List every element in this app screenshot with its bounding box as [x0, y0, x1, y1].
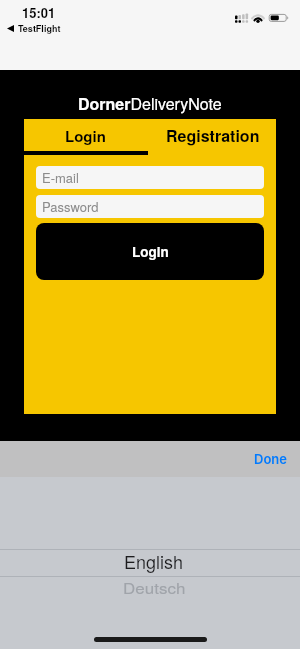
staticText: Deutsch: [123, 577, 186, 597]
staticText: Login: [132, 242, 169, 261]
staticText: Registration: [166, 124, 260, 147]
button[interactable]: Registration: [150, 119, 276, 151]
button[interactable]: Done: [254, 451, 287, 467]
button[interactable]: E-mail: [36, 166, 264, 189]
staticText: Password: [42, 197, 99, 216]
button[interactable]: Deutsch: [0, 577, 300, 603]
staticText: 15:01: [22, 3, 56, 22]
button[interactable]: Back to TestFlight: [7, 22, 61, 35]
staticText: English: [124, 548, 184, 574]
button[interactable]: Login: [24, 119, 150, 151]
button[interactable]: Password: [36, 195, 264, 218]
button[interactable]: English: [0, 550, 300, 576]
staticText: E-mail: [42, 168, 79, 187]
staticText: Login: [65, 125, 106, 146]
button[interactable]: Login: [36, 223, 264, 280]
staticText: TestFlight: [18, 22, 61, 35]
staticText: DornerDeliveryNote: [78, 92, 222, 115]
staticText: Done: [254, 451, 287, 467]
